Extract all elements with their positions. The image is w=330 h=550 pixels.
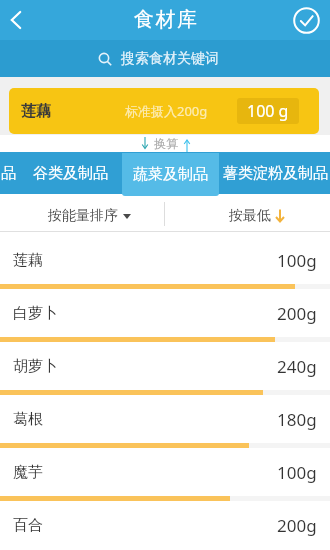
staticText: 莲藕 [21,102,51,121]
staticText: 胡萝卜 [13,357,58,376]
staticText: 200g [277,302,317,325]
staticText: 100g [277,461,317,484]
staticText: 240g [277,355,317,378]
button[interactable]: 胡萝卜 [0,342,330,395]
staticText: 按能量排序 [48,207,118,225]
staticText: 100 g [247,100,289,122]
staticText: 食材库 [134,7,199,32]
button[interactable]: 100 g [237,98,299,124]
staticText: 品 [1,164,16,183]
button[interactable]: 魔芋 [0,448,330,501]
staticText: 白萝卜 [13,304,58,323]
button[interactable] [292,6,320,34]
button[interactable]: 葛根 [0,395,330,448]
staticText: 标准摄入200g [125,102,208,120]
staticText: 魔芋 [13,463,43,482]
button[interactable]: 蔬菜及制品 [122,153,219,196]
staticText: 蔬菜及制品 [133,165,208,184]
button[interactable] [0,1,38,39]
staticText: 葛根 [13,410,43,429]
button[interactable]: 搜索食材关键词 [0,40,330,77]
button[interactable]: 百合 [0,501,330,550]
button[interactable]: 莲藕 [9,88,319,134]
staticText: 180g [277,408,317,431]
button[interactable]: 莲藕 [0,236,330,289]
staticText: 薯类淀粉及制品 [223,164,328,183]
staticText: 谷类及制品 [33,164,108,183]
staticText: 200g [277,514,317,537]
staticText: 100g [277,249,317,272]
staticText: 百合 [13,516,43,535]
button[interactable]: 薯类淀粉及制品 [221,152,330,194]
button[interactable]: 品 [0,152,24,194]
staticText: 按最低 [229,207,271,225]
button[interactable]: 谷类及制品 [22,152,118,194]
staticText: 搜索食材关键词 [121,50,219,68]
staticText: 换算 [154,136,178,151]
button[interactable]: 按最低 [165,197,330,231]
staticText: 莲藕 [13,251,43,270]
button[interactable]: 白萝卜 [0,289,330,342]
button[interactable]: 按能量排序 [0,197,164,231]
